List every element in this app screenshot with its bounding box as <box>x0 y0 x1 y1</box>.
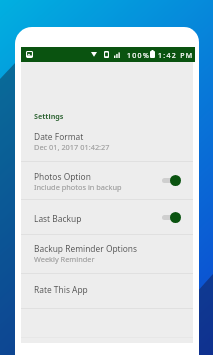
staticText: Rate This App <box>34 284 88 295</box>
staticText: Include photos in backup <box>34 182 122 192</box>
staticText: Weekly Reminder <box>34 254 95 264</box>
staticText: Date Format <box>34 131 84 142</box>
staticText: Photos Option <box>34 171 91 182</box>
button[interactable]: Toggle Last Backup <box>162 211 181 223</box>
staticText: 100% <box>127 51 151 61</box>
button[interactable]: Toggle Photos Option <box>162 174 181 186</box>
staticText: Settings <box>34 111 64 121</box>
other: Gallery notification <box>26 51 33 58</box>
staticText: Dec 01, 2017 01:42:27 <box>34 142 110 152</box>
staticText: Last Backup <box>34 213 82 224</box>
staticText: Backup Reminder Options <box>34 243 138 254</box>
staticText: 1:42 PM <box>158 51 194 61</box>
